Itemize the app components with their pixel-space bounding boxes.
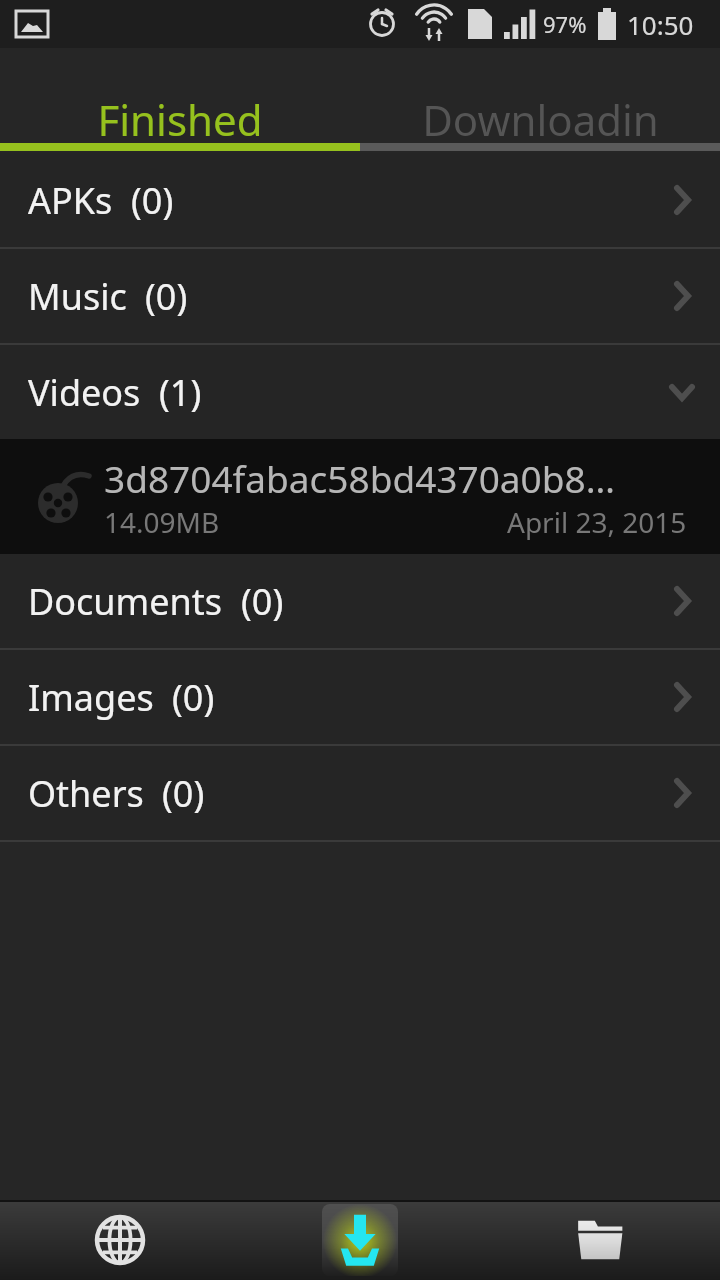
staticText: Downloadin	[422, 91, 659, 143]
staticText: Others	[28, 769, 144, 818]
button[interactable]: Images	[0, 650, 720, 744]
staticText: (0)	[172, 673, 215, 722]
button[interactable]: Videos	[0, 345, 720, 439]
button[interactable]: Browser	[0, 1200, 240, 1280]
staticText: APKs	[28, 176, 113, 225]
button[interactable]: APKs	[0, 153, 720, 247]
button[interactable]: Music	[0, 249, 720, 343]
staticText: (1)	[159, 368, 202, 417]
staticText: 14.09MB	[104, 503, 220, 541]
staticText: Finished	[97, 91, 263, 143]
staticText: 97%	[543, 9, 587, 39]
staticText: 3d8704fabac58bd4370a0b8…	[104, 453, 615, 503]
button[interactable]: 3d8704fabac58bd4370a0b8…	[0, 439, 720, 554]
staticText: Videos	[28, 368, 141, 417]
button[interactable]: Others	[0, 746, 720, 840]
staticText: (0)	[241, 577, 284, 626]
button[interactable]: Downloads	[240, 1200, 480, 1280]
staticText: (0)	[131, 176, 174, 225]
button[interactable]: Finished	[0, 48, 360, 143]
staticText: Documents	[28, 577, 223, 626]
staticText: (0)	[162, 769, 205, 818]
button[interactable]: Downloadin	[360, 48, 720, 143]
staticText: Images	[28, 673, 154, 722]
button[interactable]: Files	[480, 1200, 720, 1280]
staticText: Music	[28, 272, 127, 321]
staticText: 10:50	[627, 7, 694, 42]
staticText: April 23, 2015	[507, 503, 687, 541]
staticText: (0)	[145, 272, 188, 321]
button[interactable]: Documents	[0, 554, 720, 648]
